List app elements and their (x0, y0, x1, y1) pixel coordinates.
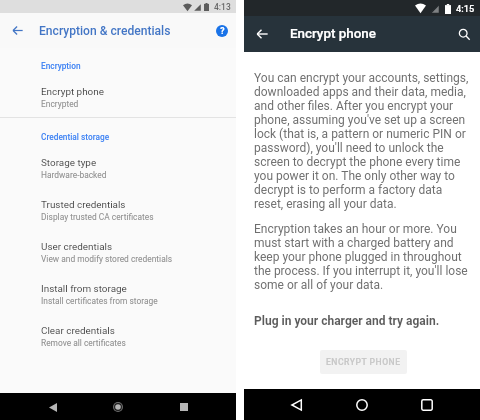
staticText: User credentials (41, 241, 113, 253)
staticText: Install from storage (41, 283, 127, 295)
staticText: You can encrypt your accounts, settings,… (254, 71, 470, 211)
button[interactable]: Storage type (0, 152, 236, 195)
button[interactable]: Navigate up (247, 19, 277, 49)
staticText: Plug in your charger and try again. (254, 314, 440, 328)
staticText: Encryption & credentials (39, 24, 171, 38)
staticText: Storage type (41, 157, 97, 169)
button[interactable]: Home (105, 394, 131, 420)
button[interactable]: Navigate up (3, 16, 31, 44)
staticText: Encrypt phone (41, 86, 104, 98)
button[interactable]: Back (283, 392, 309, 418)
staticText: 4:13 (214, 2, 231, 12)
staticText: ENCRYPT PHONE (326, 357, 401, 367)
staticText: Install certificates from storage (41, 296, 158, 306)
staticText: Display trusted CA certificates (41, 212, 154, 222)
button[interactable]: Back (40, 394, 66, 420)
button[interactable]: ENCRYPT PHONE (320, 350, 407, 374)
button[interactable]: Recent apps (171, 394, 197, 420)
button[interactable]: Search (450, 20, 478, 48)
staticText: Trusted credentials (41, 199, 126, 211)
button[interactable]: Trusted credentials (0, 194, 236, 237)
staticText: Encryption takes an hour or more. You mu… (254, 222, 470, 292)
button[interactable]: Install from storage (0, 278, 236, 321)
staticText: Credential storage (41, 132, 110, 142)
button[interactable]: Recent apps (414, 392, 440, 418)
staticText: View and modify stored credentials (41, 254, 173, 264)
button[interactable]: Home (349, 392, 375, 418)
button[interactable]: Help (209, 18, 235, 44)
button[interactable]: Clear credentials (0, 320, 236, 363)
button[interactable]: Encrypt phone (0, 81, 236, 124)
staticText: Encrypted (41, 99, 79, 109)
button[interactable]: User credentials (0, 236, 236, 279)
staticText: Remove all certificates (41, 338, 126, 348)
staticText: 4:15 (456, 3, 475, 14)
staticText: ? (220, 26, 225, 36)
staticText: Clear credentials (41, 325, 115, 337)
staticText: Encrypt phone (290, 26, 376, 42)
staticText: Encryption (41, 61, 81, 71)
staticText: Hardware-backed (41, 170, 107, 180)
